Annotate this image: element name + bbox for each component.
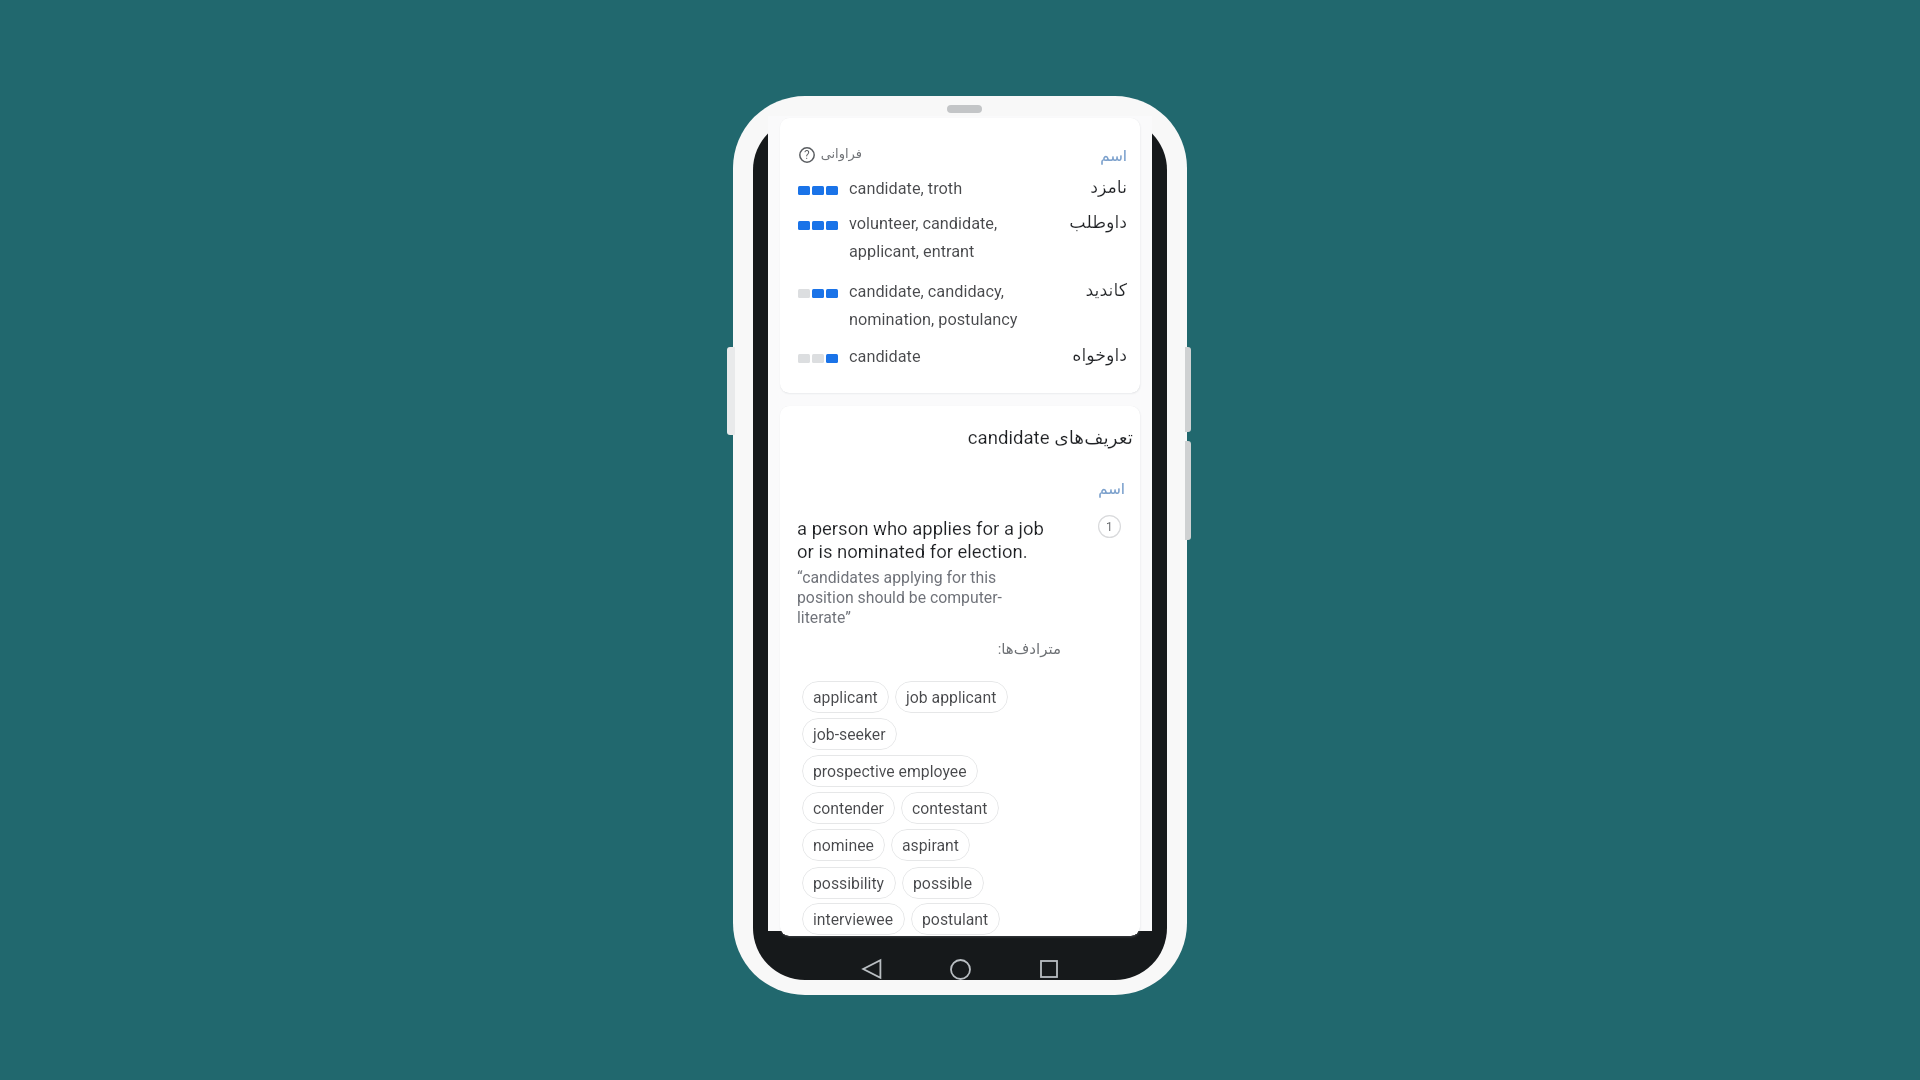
button[interactable]: nominee (802, 829, 885, 861)
button[interactable] (780, 207, 1140, 263)
button[interactable] (780, 340, 1140, 372)
staticText: کاندید (1085, 280, 1127, 300)
button[interactable]: Back (850, 947, 894, 991)
staticText: a person who applies for a job or is nom… (797, 518, 1044, 562)
staticText: مترادف‌ها: (997, 640, 1061, 658)
button[interactable] (780, 172, 1140, 204)
staticText: داوخواه (1072, 345, 1127, 365)
staticText: postulant (922, 910, 989, 929)
button[interactable]: job-seeker (802, 718, 897, 750)
staticText: اسم (1100, 147, 1127, 164)
staticText: candidate, troth (849, 179, 963, 198)
staticText: applicant (813, 688, 878, 707)
staticText: contender (813, 799, 884, 818)
button[interactable]: Recent apps (1027, 947, 1071, 991)
staticText: aspirant (902, 836, 959, 855)
staticText: prospective employee (813, 762, 967, 781)
button[interactable]: possibility (802, 867, 896, 899)
staticText: فراوانی (820, 146, 862, 161)
button[interactable] (780, 275, 1140, 331)
staticText: nominee (813, 836, 874, 855)
staticText: “candidates applying for this position s… (797, 568, 1002, 627)
button[interactable]: prospective employee (802, 755, 978, 787)
staticText: volunteer, candidate, applicant, entrant (849, 214, 998, 261)
button[interactable]: applicant (802, 681, 889, 713)
button[interactable]: job applicant (895, 681, 1008, 713)
button[interactable]: aspirant (891, 829, 970, 861)
staticText: candidate (849, 347, 921, 366)
staticText: candidate, candidacy, nomination, postul… (849, 282, 1018, 329)
staticText: داوطلب (1069, 212, 1127, 232)
staticText: نامزد (1090, 177, 1127, 197)
staticText: possibility (813, 874, 885, 893)
staticText: اسم (1098, 480, 1125, 497)
button[interactable]: contestant (901, 792, 999, 824)
button[interactable]: interviewee (802, 903, 905, 935)
button[interactable]: contender (802, 792, 895, 824)
staticText: possible (913, 874, 973, 893)
staticText: تعریف‌های candidate (967, 427, 1133, 449)
staticText: interviewee (813, 910, 894, 929)
staticText: ? (804, 148, 810, 162)
button[interactable]: possible (902, 867, 984, 899)
button[interactable]: Home (938, 947, 982, 991)
button[interactable]: postulant (911, 903, 1000, 935)
staticText: job applicant (906, 688, 997, 707)
staticText: 1 (1106, 520, 1113, 534)
staticText: contestant (912, 799, 988, 818)
staticText: job-seeker (813, 725, 886, 744)
button[interactable]: Frequency info (799, 147, 815, 163)
